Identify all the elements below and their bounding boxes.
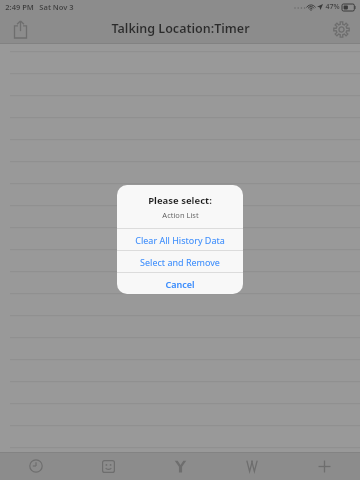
staticText: Action List [162,210,199,220]
staticText: Cancel [165,278,195,290]
button[interactable]: Share [6,15,34,43]
button[interactable]: Clear All History Data [117,229,243,250]
button[interactable]: Merge [216,452,288,480]
staticText: 47% [325,2,340,12]
button[interactable]: Add [288,452,360,480]
button[interactable]: History [0,452,72,480]
staticText: Clear All History Data [135,234,225,246]
staticText: 2:49 PM [5,2,34,12]
button[interactable]: Split [144,452,216,480]
button[interactable]: Faces [72,452,144,480]
button[interactable]: Select and Remove [117,251,243,272]
staticText: Sat Nov 3 [39,2,74,12]
staticText: Please select: [148,194,212,207]
button[interactable]: Settings [327,15,355,43]
staticText: Talking Location:Timer [111,20,250,37]
staticText: Select and Remove [140,256,220,268]
button[interactable]: Cancel [117,273,243,294]
